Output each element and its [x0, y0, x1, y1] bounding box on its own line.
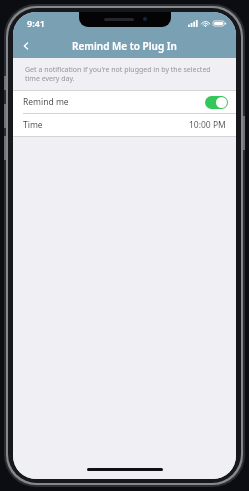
staticText: Get a notification if you're not plugged… — [25, 65, 224, 83]
button[interactable]: Remind me — [13, 91, 236, 113]
button[interactable]: Time — [13, 114, 236, 136]
staticText: 10:00 PM — [189, 119, 226, 131]
staticText: Time — [23, 119, 43, 131]
staticText: Remind me — [23, 96, 69, 108]
staticText: Remind Me to Plug In — [72, 39, 177, 53]
button[interactable]: Remind me toggle, on — [205, 96, 228, 109]
staticText: 9:41 — [27, 17, 45, 29]
button[interactable]: Back — [13, 34, 39, 58]
